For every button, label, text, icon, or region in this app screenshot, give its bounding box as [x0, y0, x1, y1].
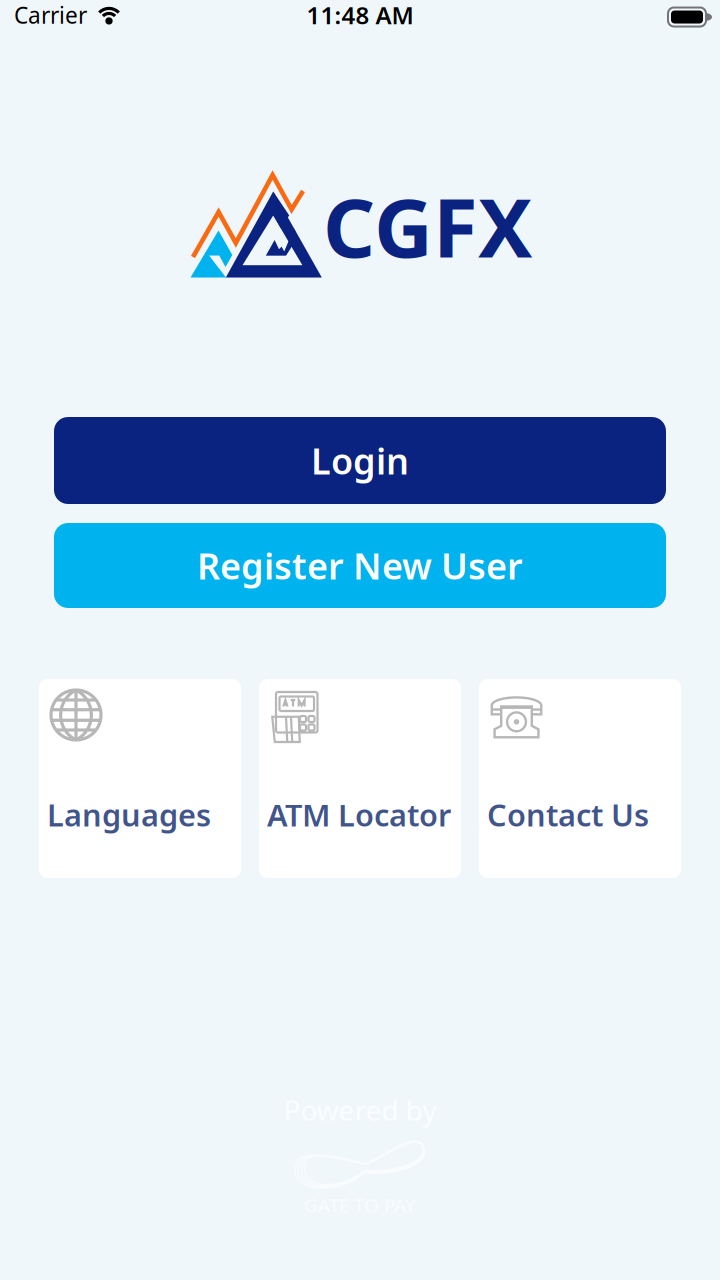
staticText: Contact Us [487, 794, 649, 835]
button[interactable]: Login [54, 417, 666, 504]
staticText: 11:48 AM [306, 0, 413, 31]
staticText: Register New User [197, 542, 523, 589]
staticText: GATE TO PAY [304, 1193, 416, 1217]
staticText: Carrier [14, 0, 87, 30]
button[interactable]: ATM Locator [259, 679, 461, 878]
staticText: Languages [47, 794, 211, 835]
button[interactable]: Languages [39, 679, 241, 878]
button[interactable]: Register New User [54, 523, 666, 608]
staticText: CGFX [323, 172, 532, 280]
staticText: Login [311, 437, 409, 484]
staticText: Powered by [283, 1091, 436, 1129]
staticText: ATM Locator [267, 794, 451, 835]
button[interactable]: Contact Us [479, 679, 681, 878]
